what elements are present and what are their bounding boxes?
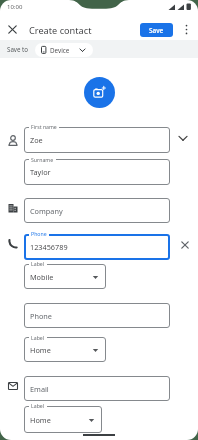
button[interactable]: Email: [24, 376, 170, 401]
staticText: 123456789: [30, 242, 68, 252]
staticText: Home: [30, 345, 51, 355]
staticText: Phone: [30, 311, 52, 321]
button[interactable]: Phone: [24, 303, 170, 328]
button[interactable]: Home: [24, 337, 106, 362]
staticText: Mobile: [30, 272, 54, 282]
staticText: Save to: [7, 45, 29, 53]
button[interactable]: Device: [35, 43, 93, 57]
staticText: Device: [50, 46, 70, 55]
button[interactable]: Home: [24, 406, 102, 433]
staticText: Zoe: [30, 135, 43, 145]
staticText: Phone: [31, 230, 47, 237]
button[interactable]: [181, 241, 189, 249]
staticText: Surname: [31, 156, 54, 163]
button[interactable]: [183, 23, 190, 36]
staticText: Create contact: [29, 24, 92, 37]
staticText: First name: [31, 123, 57, 130]
button[interactable]: Taylor: [24, 159, 170, 185]
button[interactable]: Mobile: [24, 264, 106, 289]
staticText: Label: [31, 334, 45, 341]
button[interactable]: Save: [140, 23, 173, 37]
button[interactable]: Zoe: [24, 127, 170, 153]
button[interactable]: [178, 135, 188, 142]
button[interactable]: [84, 77, 115, 108]
button[interactable]: 123456789: [24, 234, 170, 260]
staticText: Label: [31, 260, 45, 267]
button[interactable]: [8, 25, 17, 34]
staticText: Home: [30, 415, 51, 425]
staticText: Label: [31, 402, 45, 409]
staticText: Taylor: [30, 167, 51, 177]
staticText: 10:00: [7, 3, 23, 11]
button[interactable]: Company: [24, 198, 170, 223]
staticText: Email: [30, 384, 49, 394]
staticText: Save: [149, 26, 164, 35]
staticText: Company: [30, 206, 63, 216]
